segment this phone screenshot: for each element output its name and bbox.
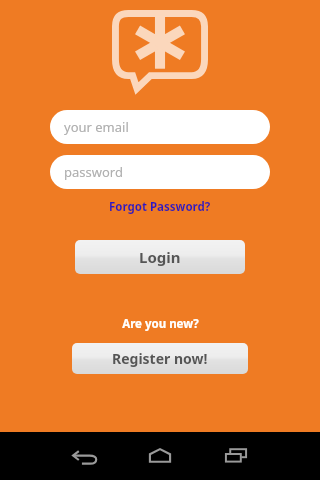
staticText: Are you new?: [122, 316, 199, 332]
button[interactable]: your email: [50, 110, 270, 144]
button[interactable]: password: [50, 155, 270, 189]
button[interactable]: Home: [138, 432, 182, 480]
staticText: Forgot Password?: [109, 199, 211, 215]
button[interactable]: Forgot Password?: [105, 196, 215, 218]
staticText: your email: [64, 118, 129, 136]
button[interactable]: Recent apps: [214, 432, 258, 480]
staticText: Login: [139, 247, 181, 267]
staticText: password: [64, 163, 123, 181]
staticText: Register now!: [112, 349, 208, 368]
button[interactable]: Back: [62, 432, 106, 480]
button[interactable]: Register now!: [72, 343, 248, 374]
button[interactable]: Login: [75, 240, 245, 274]
